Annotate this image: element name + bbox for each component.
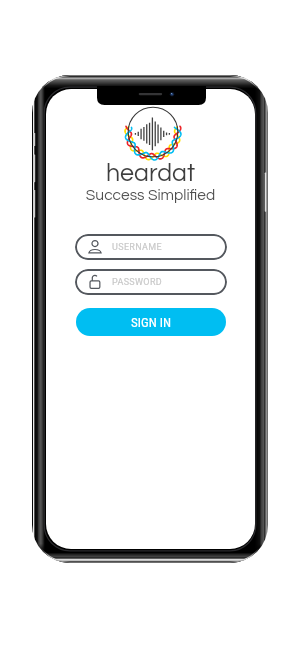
staticText: heardat	[46, 160, 255, 186]
button[interactable]: PASSWORD	[75, 269, 227, 295]
staticText: Success Simplified	[46, 187, 255, 203]
button[interactable]: USERNAME	[75, 234, 227, 260]
button[interactable]: SIGN IN	[76, 308, 226, 336]
staticText: SIGN IN	[131, 315, 172, 330]
staticText: USERNAME	[112, 242, 162, 253]
staticText: PASSWORD	[112, 277, 163, 288]
